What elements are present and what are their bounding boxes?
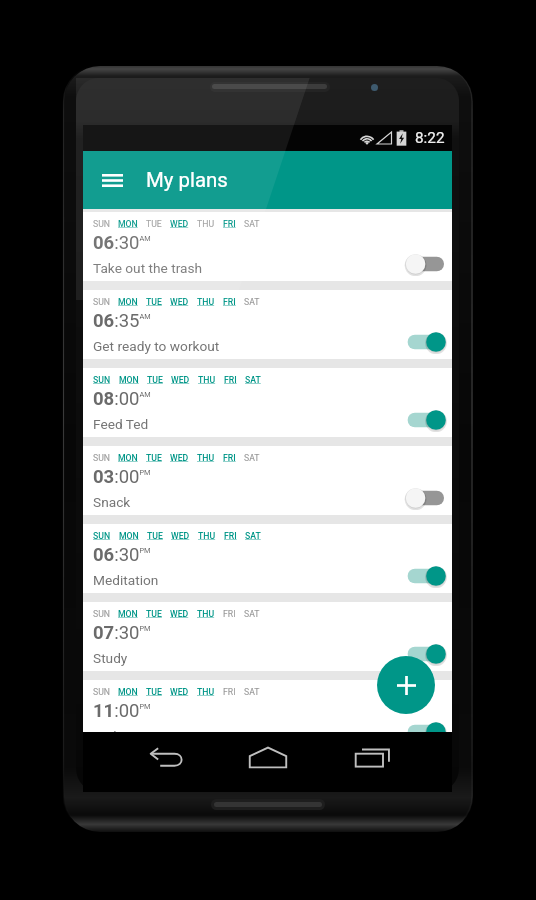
staticText: TUE [146,609,162,619]
staticText: WED [171,531,190,541]
button[interactable]: Back [141,735,193,779]
staticText: SUN [93,453,110,463]
staticText: FRI [223,219,236,229]
button[interactable]: Add plan [377,656,435,714]
staticText: MON [118,297,138,307]
staticText: MON [118,687,138,697]
staticText: Bed time [93,728,147,744]
staticText: 11:00PM [93,700,151,722]
button[interactable]: Turn alarm on [406,252,444,276]
staticText: Get ready to workout [93,338,220,354]
staticText: SUN [93,531,111,541]
staticText: SAT [245,531,261,541]
button[interactable]: SUN [83,602,452,671]
staticText: SAT [244,609,260,619]
staticText: FRI [223,297,236,307]
staticText: TUE [146,219,162,229]
staticText: THU [197,297,215,307]
staticText: SUN [93,609,110,619]
button[interactable]: SUN [83,446,452,515]
staticText: TUE [147,531,163,541]
staticText: SAT [244,687,260,697]
button[interactable]: SUN [83,290,452,359]
staticText: Snack [93,494,131,510]
staticText: WED [170,297,189,307]
staticText: 08:00AM [93,388,151,410]
staticText: MON [118,609,138,619]
staticText: SAT [244,453,260,463]
staticText: 06:35AM [93,310,151,332]
staticText: WED [170,609,189,619]
staticText: WED [170,687,189,697]
staticText: TUE [147,375,163,385]
button[interactable]: SUN [83,368,452,437]
staticText: SUN [93,375,111,385]
button[interactable]: Home [242,735,294,779]
staticText: Feed Ted [93,416,149,432]
staticText: MON [118,453,138,463]
staticText: TUE [146,687,162,697]
staticText: THU [197,453,215,463]
staticText: 03:00PM [93,466,151,488]
staticText: Take out the trash [93,260,203,276]
button[interactable]: Turn alarm off [406,408,444,432]
staticText: 8:22 [415,129,445,147]
staticText: Study [93,650,128,666]
staticText: MON [119,531,139,541]
staticText: FRI [223,609,236,619]
button[interactable]: SUN [83,524,452,593]
staticText: SAT [244,297,260,307]
button[interactable]: Turn alarm off [406,720,444,744]
staticText: WED [170,453,189,463]
staticText: THU [197,687,215,697]
staticText: SUN [93,219,110,229]
staticText: SAT [244,219,260,229]
staticText: SUN [93,687,110,697]
staticText: My plans [146,168,228,192]
staticText: FRI [224,531,237,541]
button[interactable]: Recent apps [346,735,398,779]
staticText: FRI [223,453,236,463]
staticText: MON [118,219,138,229]
staticText: MON [119,375,139,385]
staticText: THU [197,219,215,229]
button[interactable]: Turn alarm off [406,642,444,666]
staticText: SUN [93,297,110,307]
staticText: WED [170,219,189,229]
staticText: THU [198,375,216,385]
staticText: FRI [223,687,236,697]
button[interactable]: SUN [83,680,452,749]
staticText: 07:30PM [93,622,151,644]
button[interactable]: Open navigation drawer [94,162,130,198]
staticText: Meditation [93,572,159,588]
staticText: 06:30AM [93,232,151,254]
button[interactable]: Turn alarm off [406,564,444,588]
staticText: THU [198,531,216,541]
staticText: FRI [224,375,237,385]
staticText: TUE [146,453,162,463]
button[interactable]: SUN [83,212,452,281]
staticText: THU [197,609,215,619]
staticText: SAT [245,375,261,385]
button[interactable]: Turn alarm on [406,486,444,510]
staticText: 06:30PM [93,544,151,566]
button[interactable]: Turn alarm off [406,330,444,354]
staticText: TUE [146,297,162,307]
staticText: WED [171,375,190,385]
